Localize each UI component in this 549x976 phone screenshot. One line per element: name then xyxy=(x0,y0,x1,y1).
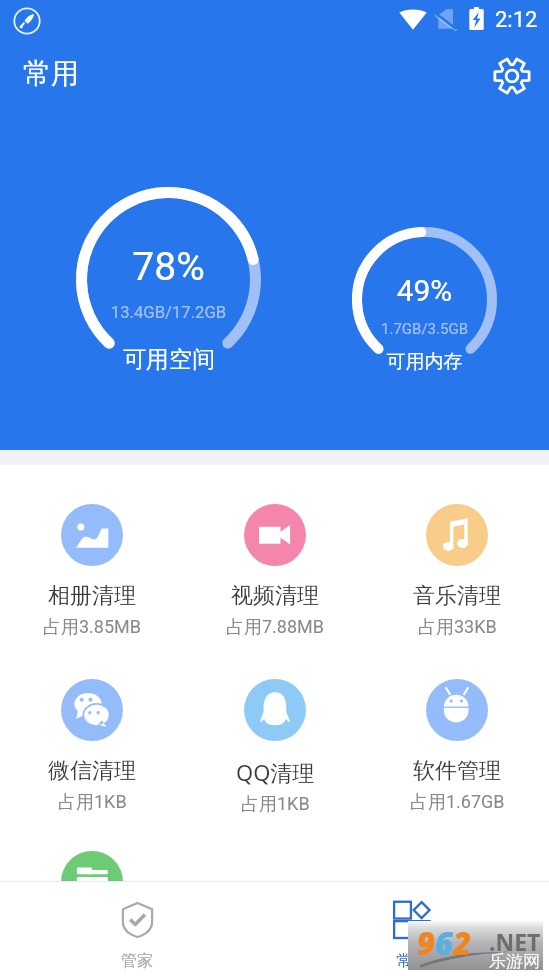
staticText: 6 xyxy=(435,922,453,964)
staticText: 相册清理 xyxy=(48,582,136,610)
staticText: 可用内存 xyxy=(325,350,524,374)
button[interactable]: 相册清理 xyxy=(4,486,180,639)
button[interactable]: 管家 xyxy=(0,882,274,976)
button[interactable]: Settings xyxy=(491,55,533,97)
button[interactable]: QQ清理 xyxy=(187,661,363,816)
staticText: QQ清理 xyxy=(236,757,315,787)
staticText: 占用3.85MB xyxy=(43,616,142,639)
staticText: 软件管理 xyxy=(413,757,501,785)
staticText: 占用1.67GB xyxy=(410,791,505,814)
staticText: 音乐清理 xyxy=(413,582,501,610)
staticText: 常用 xyxy=(396,951,428,971)
button[interactable]: 音乐清理 xyxy=(369,486,545,639)
button[interactable]: 微信清理 xyxy=(4,661,180,814)
staticText: 占用7.88MB xyxy=(226,616,325,639)
button[interactable] xyxy=(61,851,123,881)
staticText: 2 xyxy=(453,922,471,964)
staticText: 占用1KB xyxy=(241,793,310,816)
staticText: .NET xyxy=(489,926,541,957)
staticText: 占用1KB xyxy=(58,791,127,814)
button[interactable]: 视频清理 xyxy=(187,486,363,639)
staticText: 2:12 xyxy=(495,7,538,33)
staticText: 可用空间 xyxy=(0,345,338,374)
button[interactable]: Boost xyxy=(13,7,41,35)
button[interactable]: 常用 xyxy=(274,882,549,976)
staticText: 49% xyxy=(352,273,497,308)
staticText: 常用 xyxy=(23,56,79,91)
staticText: 1.7GB/3.5GB xyxy=(352,320,497,338)
staticText: 占用33KB xyxy=(418,616,497,639)
staticText: 管家 xyxy=(121,951,153,971)
staticText: 13.4GB/17.2GB xyxy=(76,303,261,323)
staticText: 视频清理 xyxy=(231,582,319,610)
staticText: 78% xyxy=(76,244,261,290)
staticText: 9 xyxy=(417,922,435,964)
staticText: 乐游网 xyxy=(489,951,540,972)
staticText: 微信清理 xyxy=(48,757,136,785)
button[interactable]: 软件管理 xyxy=(369,661,545,814)
